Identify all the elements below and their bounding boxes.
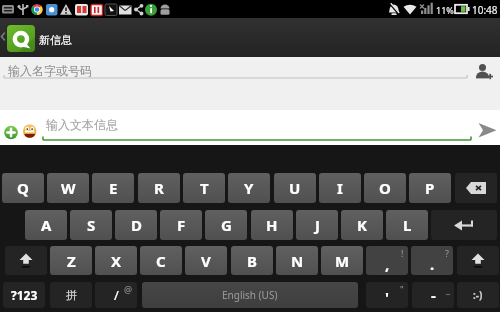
button[interactable]: N (276, 246, 318, 275)
staticText: Q (17, 178, 29, 198)
staticText: ' (385, 287, 389, 307)
staticText: 拼 (66, 288, 77, 302)
staticText: E (109, 178, 118, 198)
button[interactable]: F (160, 210, 202, 240)
staticText: English (US) (222, 288, 278, 302)
staticText: W (61, 178, 76, 198)
staticText: B (247, 251, 257, 271)
button[interactable] (474, 118, 499, 143)
button[interactable]: Z (50, 246, 92, 275)
staticText: X (111, 251, 122, 271)
button[interactable] (41, 113, 473, 142)
staticText: J (315, 215, 320, 235)
button[interactable]: G (205, 210, 247, 240)
staticText: U (289, 178, 301, 198)
staticText: Y (244, 178, 254, 198)
button[interactable]: J (296, 210, 338, 240)
button[interactable]: / (95, 282, 137, 308)
staticText: 新信息 (39, 33, 72, 47)
button[interactable]: K (341, 210, 383, 240)
button[interactable] (468, 59, 498, 87)
staticText: / (114, 286, 119, 304)
staticText: S (87, 215, 96, 235)
staticText: V (201, 251, 211, 271)
button[interactable] (7, 25, 35, 52)
staticText: T (200, 178, 209, 198)
button[interactable] (431, 210, 497, 240)
staticText: @ (124, 283, 133, 295)
button[interactable]: - (412, 282, 454, 308)
staticText: M (335, 251, 350, 271)
button[interactable]: W (47, 173, 89, 203)
button[interactable]: :-) (457, 282, 499, 308)
staticText: " (400, 283, 404, 295)
staticText: N (291, 251, 304, 271)
staticText: . (430, 254, 435, 274)
staticText: K (357, 215, 367, 235)
button[interactable]: L (386, 210, 428, 240)
staticText: D (131, 215, 142, 235)
button[interactable]: T (183, 173, 225, 203)
button[interactable] (2, 123, 20, 142)
button[interactable]: ' (366, 282, 408, 308)
button[interactable]: C (140, 246, 182, 275)
staticText: :-) (473, 288, 483, 302)
button[interactable]: E (92, 173, 134, 203)
button[interactable]: S (70, 210, 112, 240)
staticText: H (266, 215, 278, 235)
button[interactable]: ?123 (3, 282, 45, 308)
staticText: ? (445, 247, 449, 259)
staticText: L (403, 215, 412, 235)
staticText: ?123 (11, 287, 38, 303)
button[interactable]: V (185, 246, 227, 275)
staticText: 输入文本信息 (46, 117, 118, 132)
staticText: - (431, 285, 436, 305)
button[interactable] (21, 122, 39, 141)
button[interactable]: A (25, 210, 67, 240)
button[interactable]: X (95, 246, 137, 275)
staticText: F (177, 215, 186, 235)
button[interactable]: Y (228, 173, 270, 203)
staticText: R (154, 178, 164, 198)
staticText: O (379, 178, 391, 198)
staticText: G (221, 215, 232, 235)
staticText: C (156, 251, 166, 271)
button[interactable]: M (321, 246, 363, 275)
button[interactable] (457, 246, 499, 275)
staticText: Z (67, 251, 76, 271)
button[interactable] (455, 173, 497, 203)
staticText: 10:48 (472, 3, 498, 17)
staticText: P (425, 178, 435, 198)
staticText: ! (401, 247, 404, 259)
button[interactable]: H (251, 210, 293, 240)
button[interactable]: , (366, 246, 408, 275)
staticText: A (41, 215, 52, 235)
button[interactable]: U (274, 173, 316, 203)
button[interactable]: . (411, 246, 453, 275)
staticText: I (337, 178, 343, 198)
button[interactable]: P (409, 173, 451, 203)
button[interactable]: 拼 (50, 282, 92, 308)
button[interactable]: O (364, 173, 406, 203)
staticText: 输入名字或号码 (8, 63, 92, 78)
button[interactable]: 输入名字或号码 (0, 57, 500, 110)
button[interactable] (0, 18, 70, 57)
button[interactable]: English (US) (142, 282, 358, 308)
button[interactable]: I (319, 173, 361, 203)
button[interactable]: D (115, 210, 157, 240)
button[interactable]: Q (2, 173, 44, 203)
staticText: _ (446, 283, 450, 295)
button[interactable] (5, 246, 47, 275)
staticText: 11% (436, 4, 454, 16)
staticText: , (385, 254, 390, 274)
button[interactable]: B (231, 246, 273, 275)
button[interactable]: R (138, 173, 180, 203)
